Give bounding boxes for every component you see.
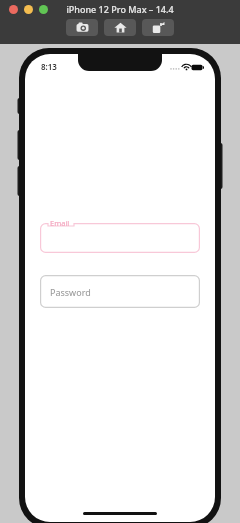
button[interactable]: Screenshot bbox=[66, 19, 98, 36]
staticText: iPhone 12 Pro Max – 14.4 bbox=[66, 3, 174, 15]
button[interactable]: Password bbox=[40, 275, 200, 308]
staticText: Password bbox=[50, 286, 91, 298]
button[interactable]: Rotate bbox=[142, 19, 174, 36]
button[interactable]: Zoom bbox=[39, 5, 48, 14]
button[interactable]: Minimize bbox=[24, 5, 33, 14]
button[interactable]: Close bbox=[9, 5, 18, 14]
staticText: 8:13 bbox=[41, 61, 57, 72]
button[interactable]: Home bbox=[104, 19, 136, 36]
button[interactable]: Email bbox=[40, 218, 200, 253]
staticText: Email bbox=[50, 218, 70, 228]
